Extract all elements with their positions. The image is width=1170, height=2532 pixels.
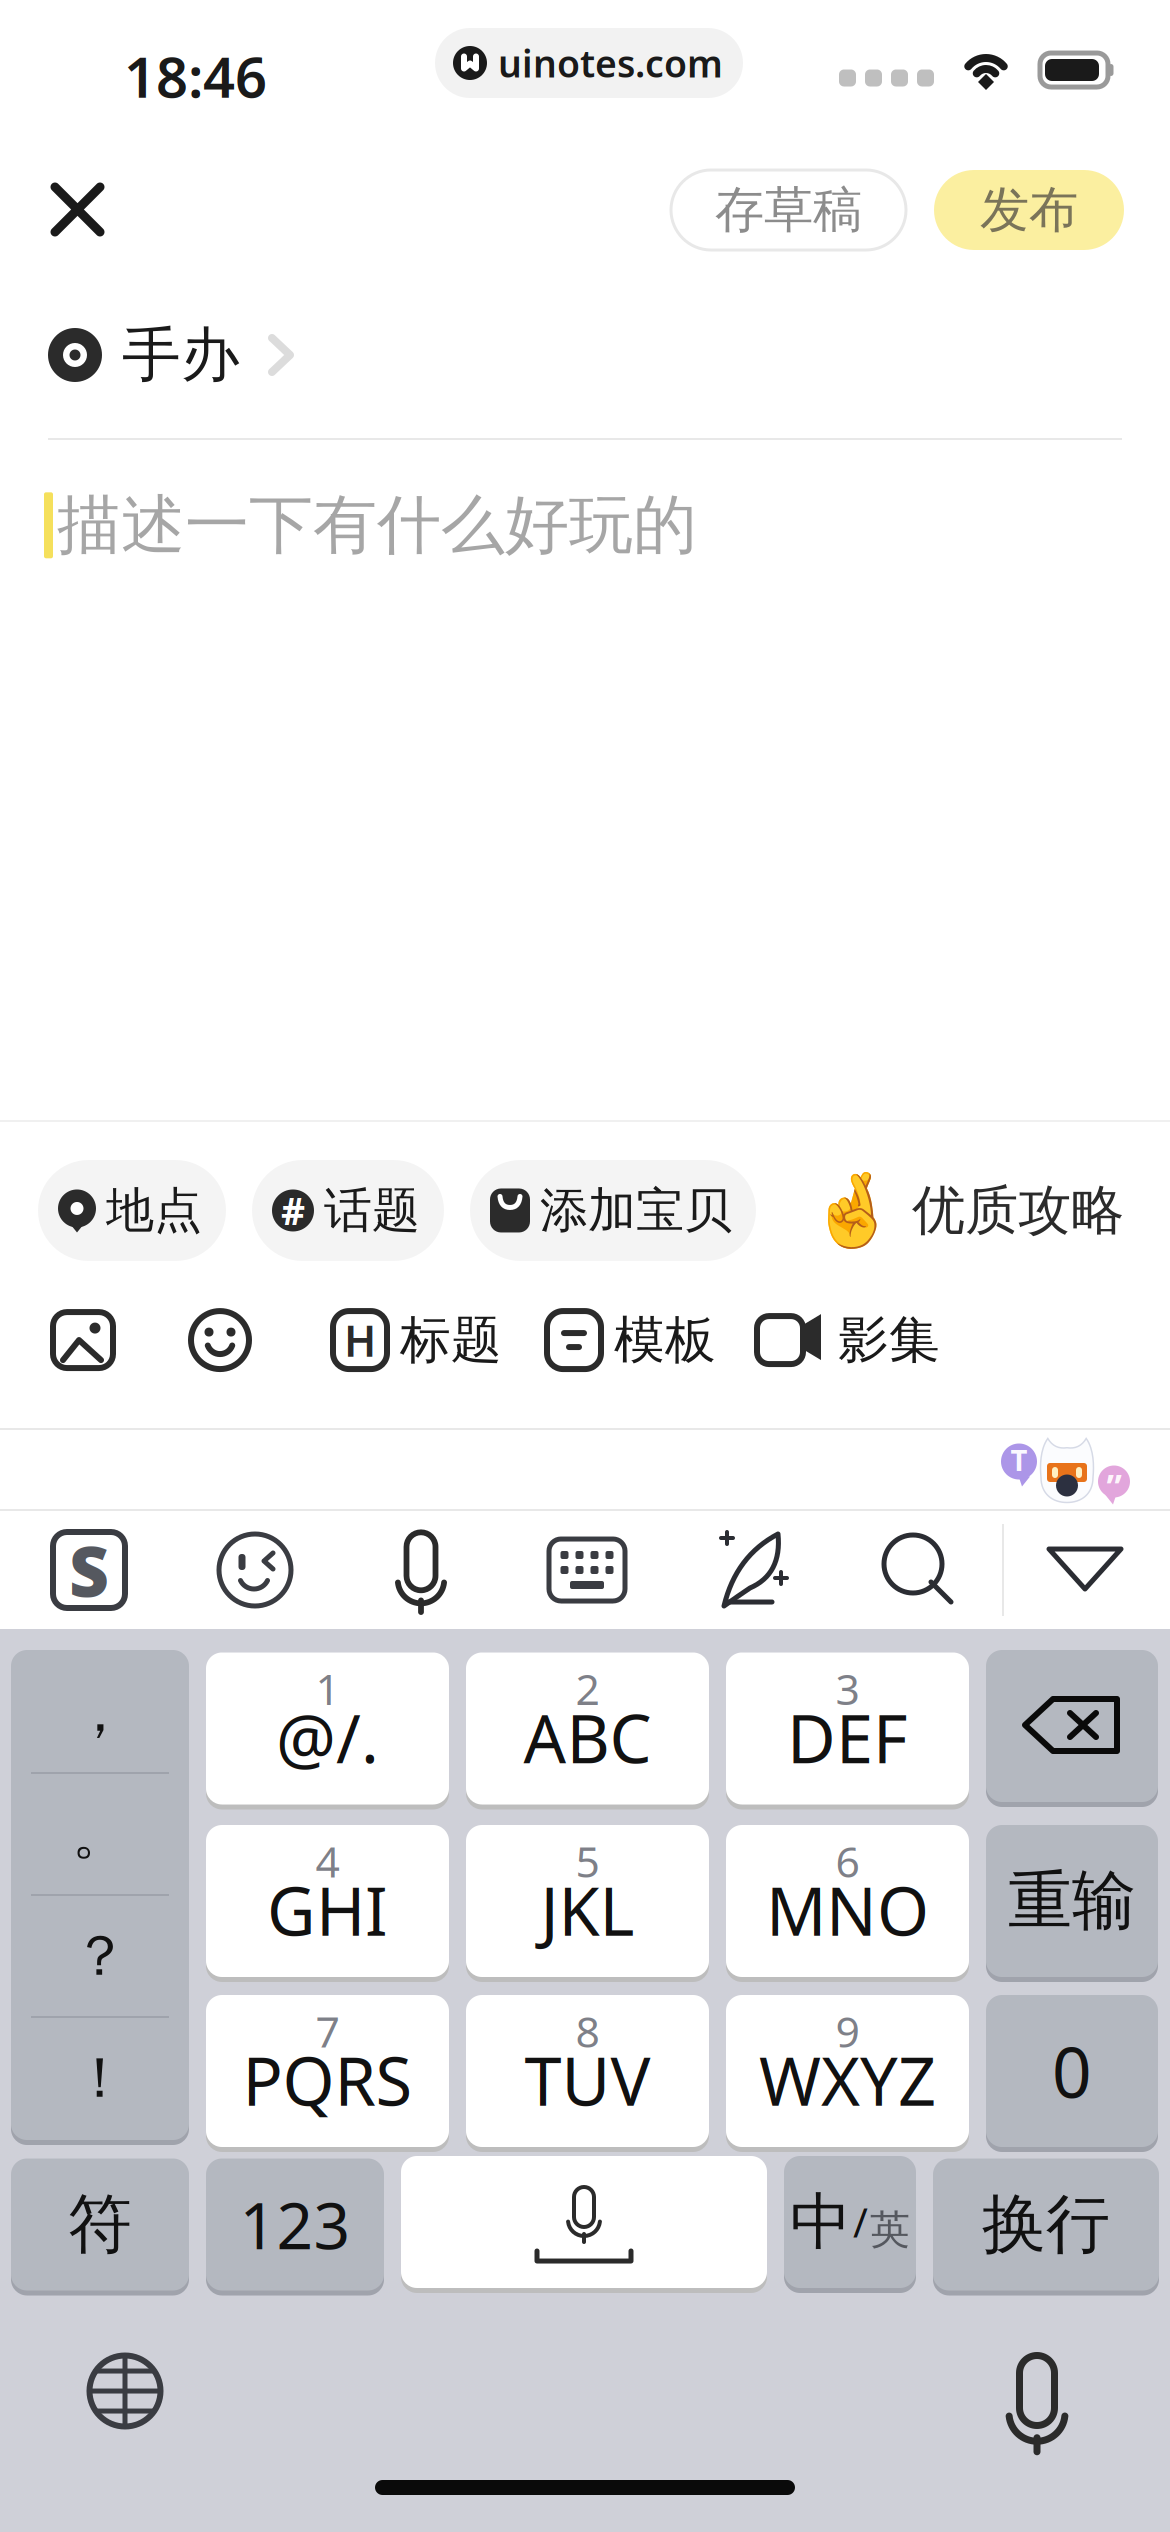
staticText: 影集: [838, 1309, 940, 1371]
button[interactable]: [190, 1310, 250, 1370]
staticText: 。: [72, 1800, 128, 1868]
button[interactable]: 模板: [546, 1309, 716, 1371]
staticText: 英: [870, 2205, 910, 2254]
staticText: 符: [68, 2185, 132, 2264]
button[interactable]: Voice input: [338, 1518, 504, 1622]
button[interactable]: 地点: [38, 1160, 226, 1261]
staticText: 地点: [106, 1181, 202, 1240]
button[interactable]: Dictate: [1002, 2345, 1072, 2457]
button[interactable]: Hide keyboard: [1004, 1518, 1168, 1622]
staticText: 7: [315, 2003, 339, 2059]
staticText: 模板: [614, 1309, 716, 1371]
button[interactable]: 手办: [0, 300, 1170, 410]
staticText: S: [69, 1524, 109, 1616]
button[interactable]: 添加宝贝: [470, 1160, 756, 1261]
staticText: ！: [72, 2044, 128, 2112]
button[interactable]: 影集: [756, 1309, 940, 1371]
staticText: 18:46: [124, 39, 267, 113]
staticText: T: [1010, 1440, 1027, 1479]
staticText: ？: [72, 1922, 128, 1990]
staticText: 换行: [982, 2185, 1110, 2264]
staticText: PQRS: [242, 2036, 412, 2124]
button[interactable]: Sogou: [6, 1518, 172, 1622]
staticText: ABC: [523, 1693, 651, 1782]
button[interactable]: 🤞: [808, 1169, 1124, 1252]
staticText: TUV: [524, 2036, 650, 2124]
staticText: 🤞: [808, 1169, 898, 1252]
staticText: WXYZ: [759, 2036, 936, 2124]
button[interactable]: Close: [0, 146, 134, 274]
staticText: 描述一下有什么好玩的: [57, 486, 697, 565]
staticText: 话题: [324, 1181, 420, 1240]
staticText: 标题: [400, 1309, 502, 1371]
staticText: H: [344, 1312, 376, 1368]
staticText: JKL: [540, 1866, 634, 1954]
staticText: #: [281, 1186, 305, 1235]
staticText: ，: [72, 1678, 128, 1746]
button[interactable]: 发布: [934, 170, 1124, 250]
staticText: 2: [575, 1660, 599, 1717]
button[interactable]: Keyboard layout: [504, 1518, 670, 1622]
staticText: 9: [835, 2003, 859, 2059]
staticText: ”: [1106, 1462, 1121, 1508]
staticText: @/.: [276, 1693, 379, 1782]
staticText: DEF: [787, 1693, 908, 1782]
staticText: 123: [239, 2182, 350, 2267]
staticText: 优质攻略: [912, 1178, 1124, 1243]
staticText: 添加宝贝: [540, 1181, 732, 1240]
staticText: 发布: [980, 180, 1078, 240]
staticText: 中: [790, 2184, 851, 2260]
button[interactable]: Emoji: [172, 1518, 338, 1622]
staticText: 5: [575, 1833, 599, 1889]
button[interactable]: [52, 1311, 114, 1369]
button[interactable]: H: [332, 1309, 502, 1371]
staticText: 存草稿: [715, 180, 862, 240]
staticText: MNO: [766, 1866, 929, 1954]
staticText: 手办: [122, 319, 240, 391]
button[interactable]: Search: [836, 1518, 1002, 1622]
staticText: 3: [835, 1660, 859, 1717]
staticText: 6: [835, 1833, 859, 1889]
staticText: 重输: [1008, 1862, 1136, 1940]
button[interactable]: #: [252, 1160, 444, 1261]
staticText: 8: [575, 2003, 599, 2059]
staticText: 0: [1052, 2025, 1092, 2117]
staticText: /: [853, 2195, 868, 2248]
button[interactable]: Switch keyboard: [88, 2354, 162, 2428]
button[interactable]: 存草稿: [671, 170, 906, 250]
staticText: uinotes.com: [498, 38, 723, 88]
button[interactable]: Handwriting: [670, 1518, 836, 1622]
staticText: GHI: [267, 1866, 388, 1954]
staticText: 4: [315, 1833, 339, 1889]
staticText: 1: [315, 1660, 339, 1717]
